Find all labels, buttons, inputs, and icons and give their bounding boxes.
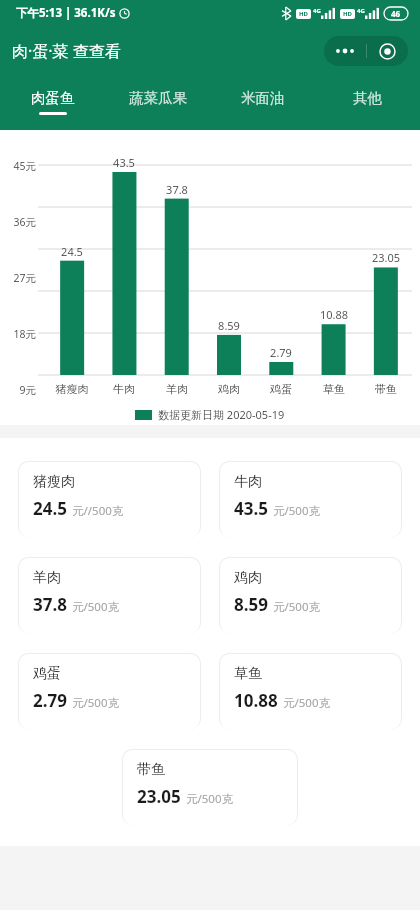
staticText: 带鱼 <box>137 761 165 779</box>
staticText: 8.59 <box>234 593 268 616</box>
button[interactable]: 肉蛋鱼 <box>0 74 105 130</box>
staticText: 元/500克 <box>72 599 120 615</box>
staticText: 带鱼 <box>360 382 412 396</box>
button[interactable]: 羊肉 <box>18 556 201 633</box>
staticText: 草鱼 <box>234 665 262 683</box>
staticText: 元/500克 <box>186 791 234 807</box>
staticText: 猪瘦肉 <box>46 382 98 396</box>
staticText: 18元 <box>8 327 36 341</box>
button[interactable]: 草鱼 <box>219 652 402 729</box>
button[interactable]: More <box>324 36 366 66</box>
staticText: 4G <box>357 7 365 15</box>
staticText: 下午5:13 | 36.1K/s <box>16 5 116 21</box>
staticText: 2.79 <box>255 345 307 360</box>
button[interactable]: Close <box>367 36 408 66</box>
staticText: 23.05 <box>360 250 412 265</box>
staticText: 肉蛋鱼 <box>31 89 75 107</box>
staticText: 元/500克 <box>273 503 321 519</box>
staticText: 2.79 <box>33 689 67 712</box>
staticText: 牛肉 <box>98 382 150 396</box>
staticText: 10.88 <box>308 307 360 322</box>
staticText: HD <box>343 10 352 18</box>
staticText: 27元 <box>8 271 36 285</box>
staticText: 羊肉 <box>151 382 203 396</box>
staticText: 23.05 <box>137 785 181 808</box>
staticText: 数据更新日期 2020-05-19 <box>158 407 285 422</box>
staticText: 元//500克 <box>72 503 124 519</box>
staticText: 45元 <box>8 159 36 173</box>
staticText: 猪瘦肉 <box>33 473 75 491</box>
staticText: 9元 <box>8 383 36 397</box>
staticText: 24.5 <box>33 497 67 520</box>
staticText: 43.5 <box>98 155 150 170</box>
staticText: 鸡肉 <box>234 569 262 587</box>
staticText: 肉·蛋·菜 查查看 <box>12 40 121 62</box>
staticText: 米面油 <box>241 89 285 107</box>
staticText: 元/500克 <box>273 599 321 615</box>
button[interactable]: 牛肉 <box>219 460 402 537</box>
staticText: 草鱼 <box>308 382 360 396</box>
button[interactable]: 鸡肉 <box>219 556 402 633</box>
staticText: 蔬菜瓜果 <box>129 89 187 107</box>
staticText: 10.88 <box>234 689 278 712</box>
button[interactable]: 带鱼 <box>122 748 298 825</box>
button[interactable]: 猪瘦肉 <box>18 460 201 537</box>
staticText: 37.8 <box>151 182 203 197</box>
staticText: 鸡蛋 <box>255 382 307 396</box>
staticText: 37.8 <box>33 593 67 616</box>
staticText: 鸡蛋 <box>33 665 61 683</box>
button[interactable]: 鸡蛋 <box>18 652 201 729</box>
staticText: 4G <box>313 7 321 15</box>
staticText: 鸡肉 <box>203 382 255 396</box>
button[interactable]: 蔬菜瓜果 <box>105 74 210 130</box>
staticText: 36元 <box>8 215 36 229</box>
button[interactable]: 其他 <box>315 74 420 130</box>
staticText: HD <box>299 10 308 18</box>
staticText: 24.5 <box>46 244 98 259</box>
staticText: 43.5 <box>234 497 268 520</box>
staticText: 8.59 <box>203 318 255 333</box>
staticText: 46 <box>391 8 401 19</box>
staticText: 其他 <box>353 89 382 107</box>
staticText: 羊肉 <box>33 569 61 587</box>
staticText: 牛肉 <box>234 473 262 491</box>
staticText: 元/500克 <box>283 695 331 711</box>
button[interactable]: 米面油 <box>210 74 315 130</box>
staticText: 元/500克 <box>72 695 120 711</box>
